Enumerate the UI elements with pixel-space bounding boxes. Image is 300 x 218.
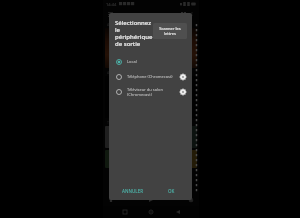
staticText: OK xyxy=(168,188,175,194)
button[interactable]: Device settings xyxy=(178,87,187,96)
button[interactable]: More options xyxy=(188,10,196,18)
staticText: 14:44 xyxy=(106,2,117,7)
button[interactable]: Téléphone (Chromecast) xyxy=(109,69,192,84)
staticText: Téléphone (Chromecast) xyxy=(127,74,178,79)
button[interactable]: Menu xyxy=(106,10,115,19)
staticText: Bibliothèque xyxy=(118,11,151,18)
button[interactable] xyxy=(105,28,197,68)
button[interactable] xyxy=(105,76,197,118)
staticText: ARTISTES xyxy=(107,22,123,27)
button[interactable] xyxy=(105,150,123,168)
button[interactable]: Play xyxy=(147,196,155,204)
staticText: Téléviseur du salon (Chromecast) xyxy=(127,87,178,97)
button[interactable]: Home xyxy=(107,196,115,204)
button[interactable]: Settings xyxy=(187,196,195,204)
staticText: Sélectionnez le périphérique de sortie xyxy=(115,19,153,48)
staticText: ALBUMS xyxy=(107,70,121,75)
button[interactable]: Scanner les lettres xyxy=(153,23,187,39)
button[interactable]: OK xyxy=(165,186,178,196)
button[interactable]: Téléviseur du salon (Chromecast) xyxy=(109,84,192,99)
staticText: Scanner les lettres xyxy=(156,26,184,36)
button[interactable] xyxy=(105,126,182,148)
button[interactable]: Recents xyxy=(120,207,130,217)
button[interactable] xyxy=(183,126,197,148)
staticText: TITRES xyxy=(107,120,119,125)
staticText: Local xyxy=(127,59,187,64)
button[interactable]: Local xyxy=(109,54,192,69)
button[interactable]: Device settings xyxy=(178,72,187,81)
staticText: ANNULER xyxy=(122,188,144,194)
button[interactable]: Grid view xyxy=(179,10,188,19)
button[interactable]: Back xyxy=(173,207,183,217)
button[interactable]: ANNULER xyxy=(119,186,147,196)
button[interactable]: Home xyxy=(146,207,156,217)
button[interactable] xyxy=(191,150,197,168)
